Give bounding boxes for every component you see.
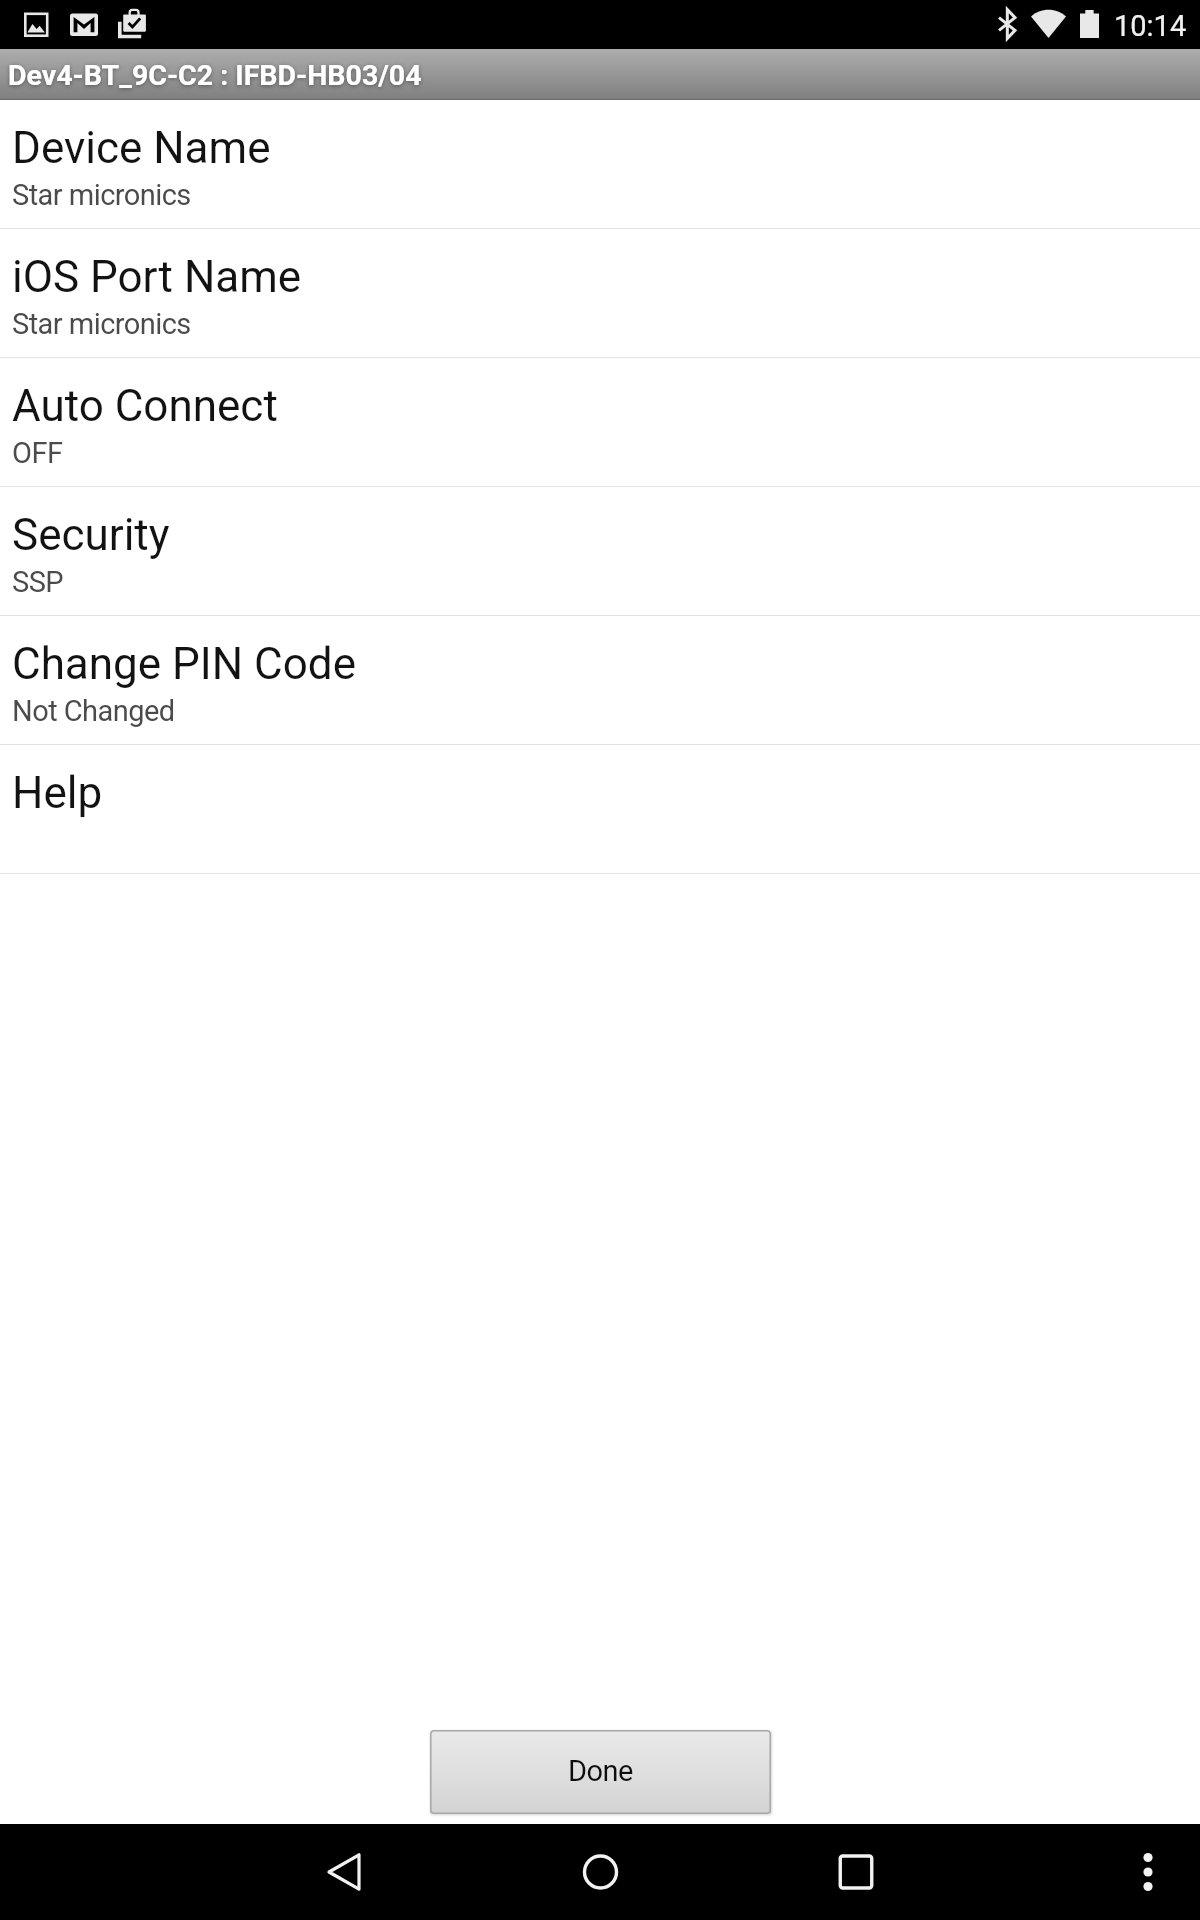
staticText: Star micronics: [12, 307, 191, 341]
staticText: Device Name: [12, 122, 271, 174]
button[interactable]: iOS Port Name: [0, 229, 1200, 358]
staticText: Auto Connect: [12, 380, 278, 432]
staticText: 10:14: [1114, 9, 1187, 43]
staticText: Dev4-BT_9C-C2 : IFBD-HB03/04: [8, 59, 422, 92]
button[interactable]: Recent apps: [811, 1827, 901, 1917]
staticText: Done: [568, 1754, 633, 1788]
staticText: iOS Port Name: [12, 251, 302, 303]
button[interactable]: Home: [555, 1827, 645, 1917]
staticText: Star micronics: [12, 178, 191, 212]
button[interactable]: Security: [0, 487, 1200, 616]
button[interactable]: Help: [0, 745, 1200, 874]
staticText: OFF: [12, 436, 63, 470]
staticText: Not Changed: [12, 694, 175, 728]
button[interactable]: More options: [1103, 1827, 1193, 1917]
button[interactable]: Auto Connect: [0, 358, 1200, 487]
staticText: Change PIN Code: [12, 638, 356, 690]
staticText: Security: [12, 509, 170, 561]
button[interactable]: Done: [430, 1730, 771, 1814]
staticText: SSP: [12, 565, 64, 599]
button[interactable]: Back: [303, 1827, 393, 1917]
staticText: Help: [12, 767, 103, 819]
button[interactable]: Device Name: [0, 100, 1200, 229]
button[interactable]: Change PIN Code: [0, 616, 1200, 745]
